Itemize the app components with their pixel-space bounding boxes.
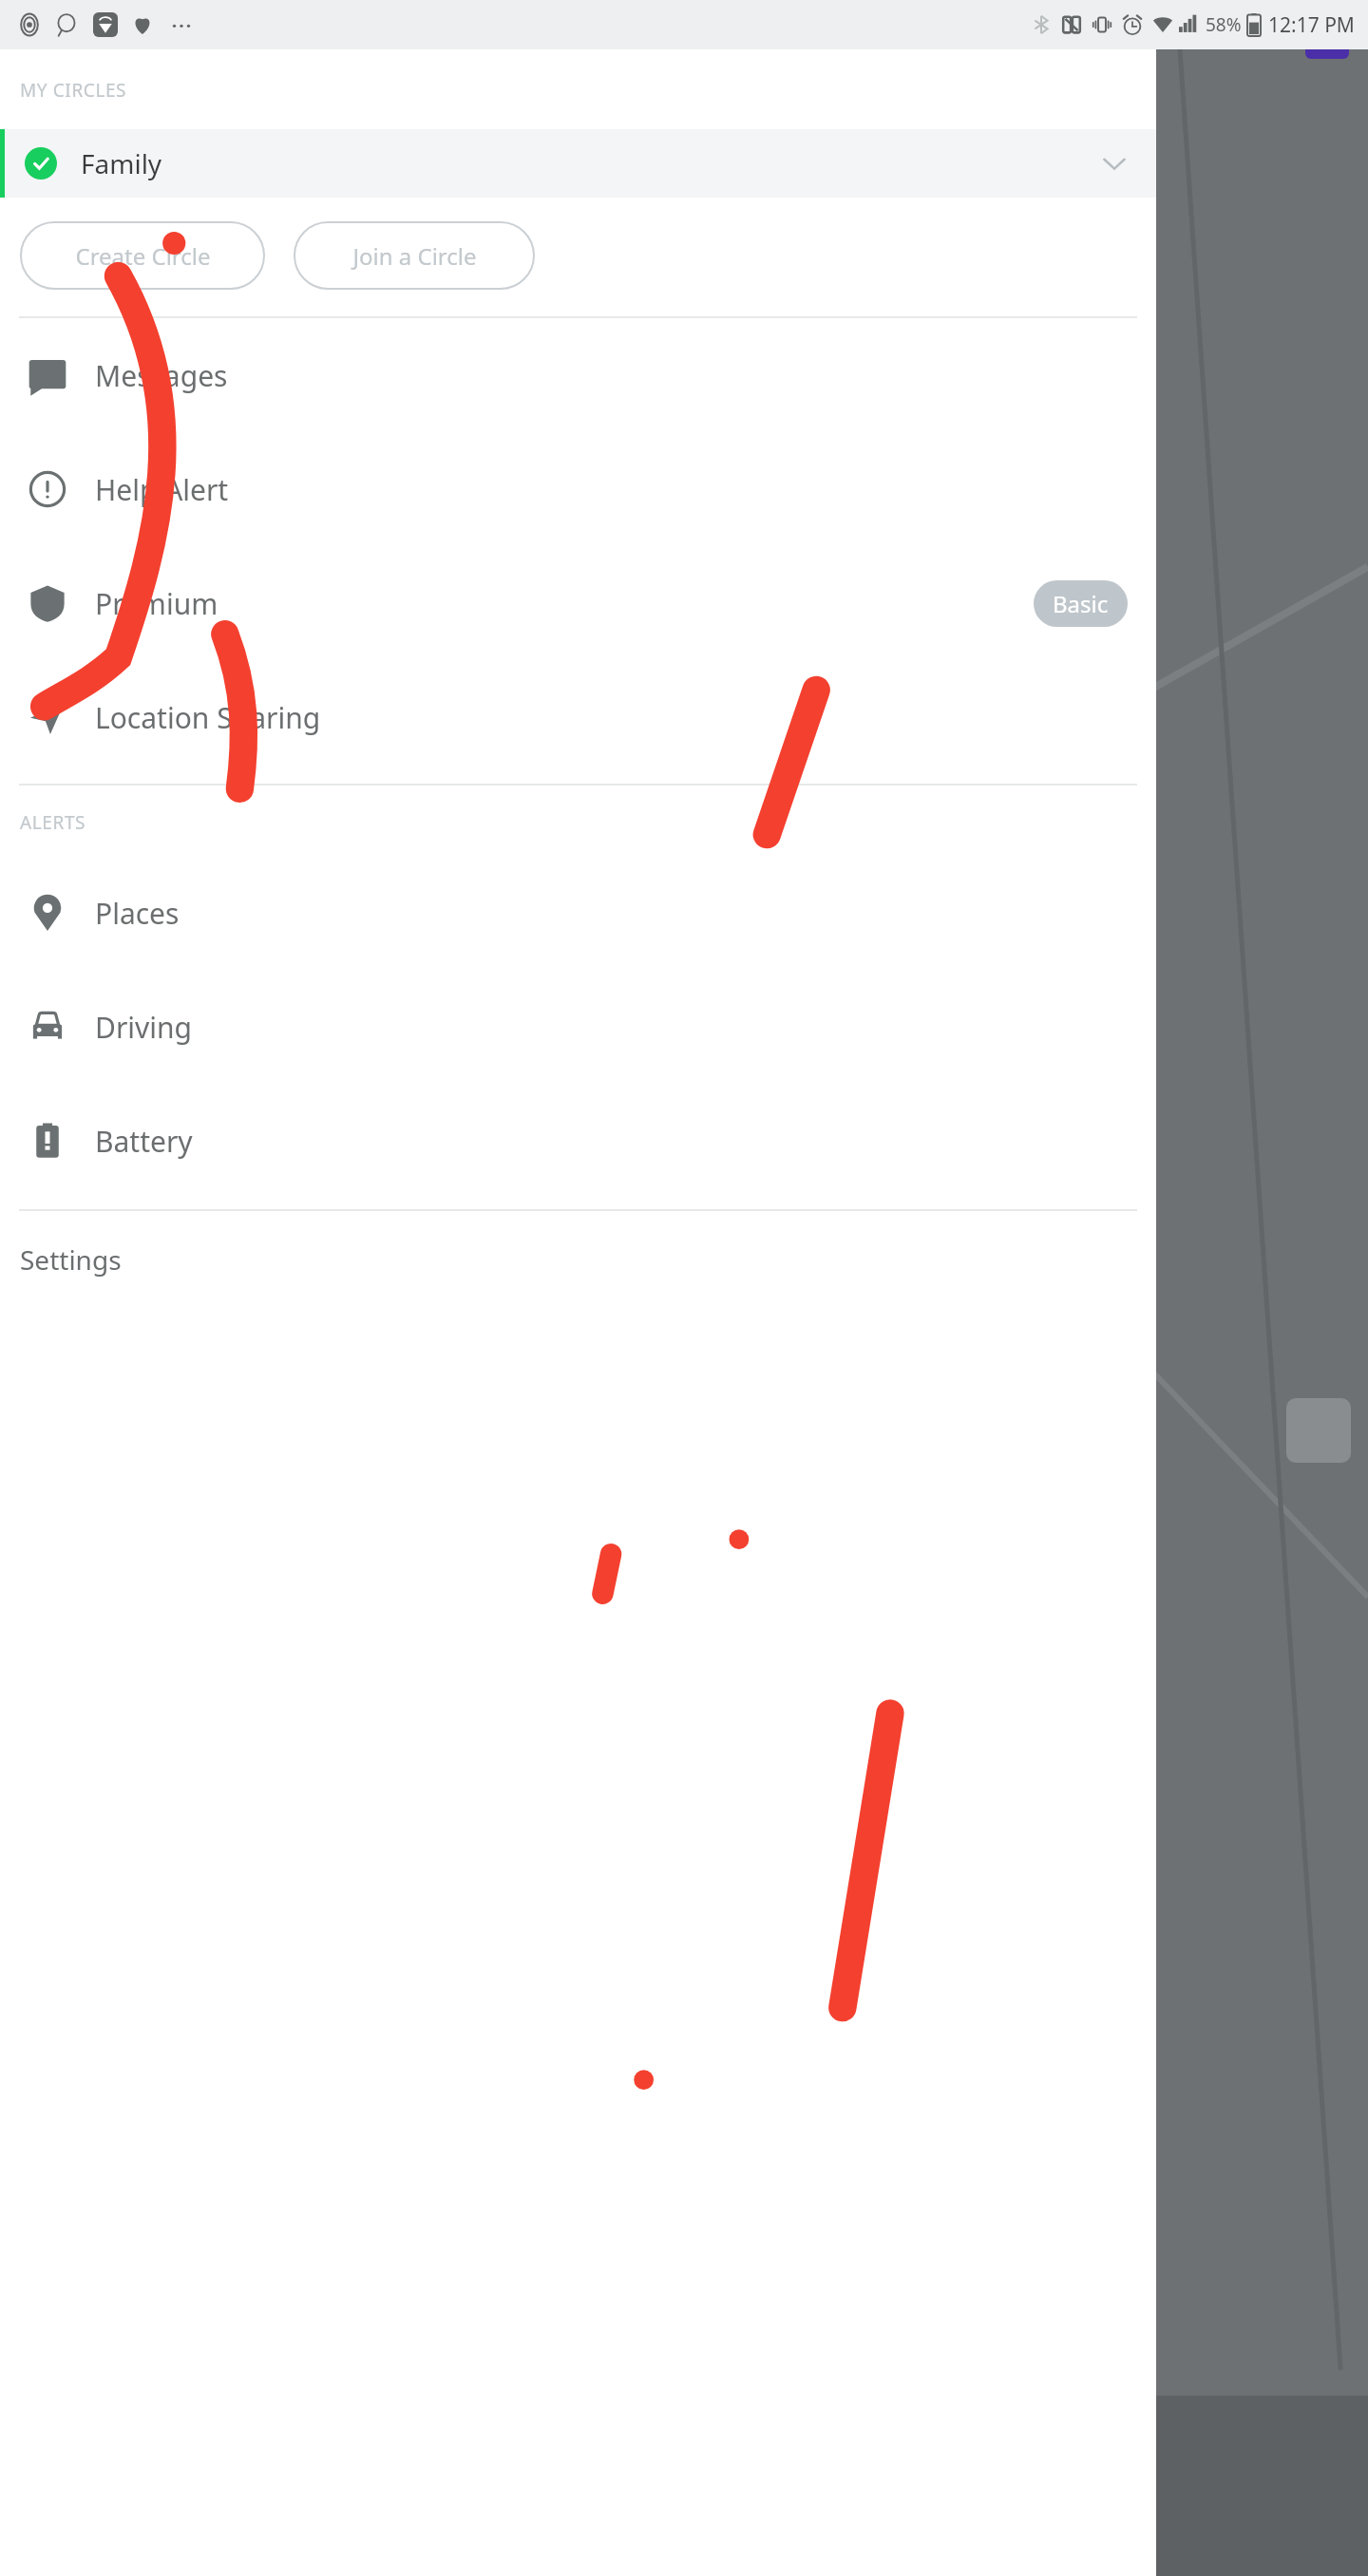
staticText: Battery — [95, 1122, 193, 1161]
button[interactable]: Family — [0, 129, 1156, 198]
button[interactable]: Join a Circle — [294, 221, 535, 290]
staticText: Family — [81, 145, 162, 181]
button[interactable]: Premium — [0, 546, 1156, 660]
button[interactable]: Messages — [0, 318, 1156, 432]
staticText: 12:17 PM — [1268, 11, 1355, 39]
staticText: Messages — [95, 356, 228, 395]
staticText: Driving — [95, 1008, 192, 1047]
staticText: Settings — [20, 1241, 122, 1278]
staticText: Help Alert — [95, 470, 229, 509]
staticText: Create Circle — [75, 240, 211, 272]
staticText: Basic — [1053, 588, 1109, 619]
button[interactable]: Location Sharing — [0, 660, 1156, 774]
staticText: Location Sharing — [95, 698, 321, 737]
button[interactable]: Places — [0, 856, 1156, 970]
staticText: Places — [95, 894, 180, 933]
button[interactable]: Directions — [1286, 1398, 1351, 1463]
button[interactable]: Driving — [0, 970, 1156, 1084]
staticText: ALERTS — [20, 810, 86, 835]
staticText: Join a Circle — [352, 240, 477, 272]
button[interactable]: Messages — [1305, 15, 1349, 59]
staticText: MY CIRCLES — [20, 78, 127, 103]
button[interactable]: Create Circle — [20, 221, 265, 290]
staticText: 58% — [1206, 12, 1242, 37]
button[interactable]: Battery — [0, 1084, 1156, 1198]
button[interactable]: Settings — [0, 1228, 1156, 1291]
staticText: Premium — [95, 584, 218, 623]
button[interactable]: Help Alert — [0, 432, 1156, 546]
